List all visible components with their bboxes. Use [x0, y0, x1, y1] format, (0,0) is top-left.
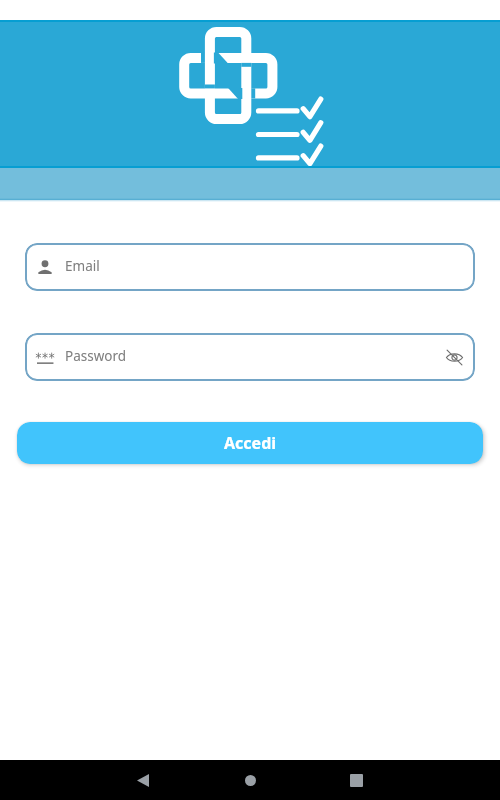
staticText: Email — [65, 257, 100, 275]
staticText: Accedi — [224, 432, 277, 454]
button[interactable]: Accedi — [17, 422, 483, 464]
button[interactable]: Password — [25, 333, 475, 381]
button[interactable]: Email — [25, 243, 475, 291]
staticText: Password — [65, 347, 127, 365]
button[interactable]: Show password — [441, 344, 467, 370]
button[interactable]: Home — [230, 760, 270, 800]
button[interactable]: Back — [123, 760, 163, 800]
button[interactable]: Recents — [336, 760, 376, 800]
